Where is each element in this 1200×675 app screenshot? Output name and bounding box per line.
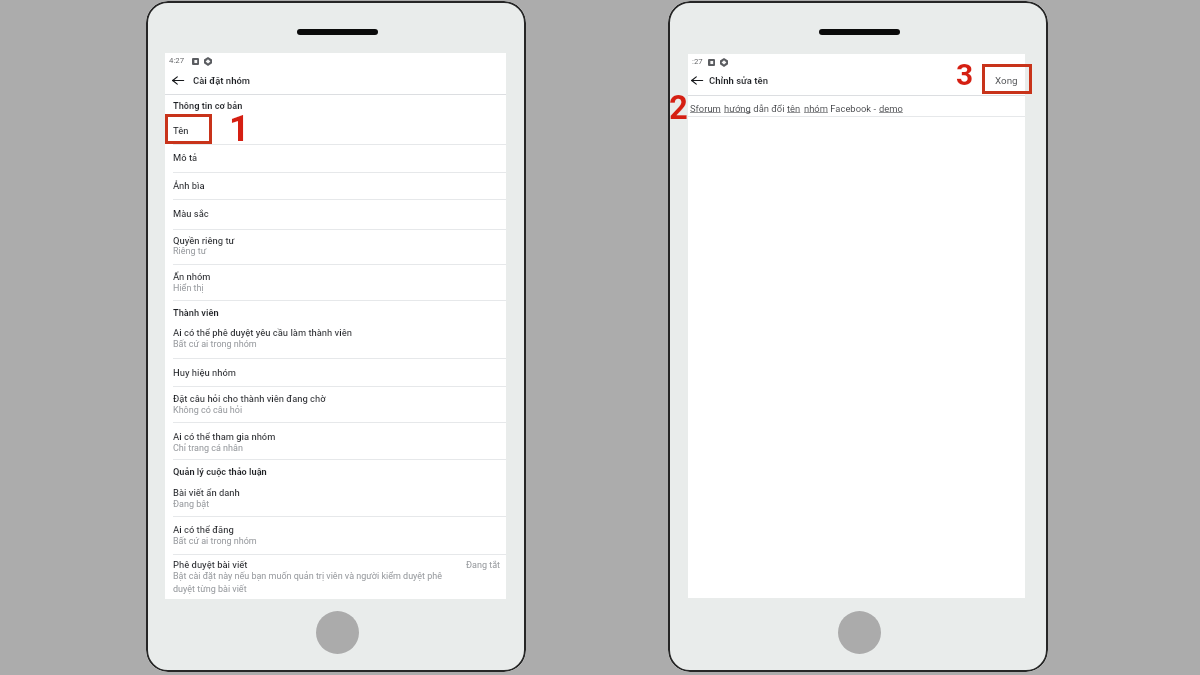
staticText: Bất cứ ai trong nhóm bbox=[173, 536, 257, 547]
staticText: Phê duyệt bài viết bbox=[173, 559, 248, 570]
button[interactable]: Đặt câu hỏi cho thành viên đang chờ bbox=[165, 386, 506, 421]
staticText: 3 bbox=[956, 57, 974, 92]
staticText: Bất cứ ai trong nhóm bbox=[173, 339, 257, 350]
staticText: Ai có thể phê duyệt yêu cầu làm thành vi… bbox=[173, 327, 352, 338]
staticText: Bật cài đặt này nếu bạn muốn quản trị vi… bbox=[173, 571, 450, 595]
staticText: Thành viên bbox=[173, 307, 219, 318]
staticText: Ảnh bìa bbox=[173, 180, 205, 191]
staticText: Mô tả bbox=[173, 152, 198, 163]
staticText: 2 bbox=[669, 88, 688, 127]
button[interactable]: Màu sắc bbox=[165, 200, 506, 228]
staticText: Xong bbox=[995, 75, 1018, 86]
staticText: Đặt câu hỏi cho thành viên đang chờ bbox=[173, 393, 326, 404]
button[interactable]: Ai có thể tham gia nhóm bbox=[165, 422, 506, 458]
staticText: Sforum bbox=[690, 103, 721, 114]
staticText: tên bbox=[787, 103, 801, 114]
staticText: Riêng tư bbox=[173, 246, 207, 257]
staticText: Facebook - bbox=[828, 103, 879, 114]
staticText: 1 bbox=[229, 108, 250, 150]
button[interactable]: Xong bbox=[988, 66, 1025, 94]
staticText: Chỉ trang cá nhân bbox=[173, 443, 243, 454]
staticText: hướng bbox=[724, 103, 751, 114]
staticText: Tên bbox=[173, 125, 189, 136]
staticText: Thông tin cơ bản bbox=[173, 100, 243, 111]
staticText: Bài viết ẩn danh bbox=[173, 487, 240, 498]
staticText: Màu sắc bbox=[173, 208, 209, 219]
staticText: Không có câu hỏi bbox=[173, 405, 243, 416]
staticText: Cài đặt nhóm bbox=[193, 75, 251, 86]
other: Back bbox=[172, 76, 184, 85]
staticText: Hiển thị bbox=[173, 283, 204, 294]
button[interactable]: Back bbox=[165, 66, 506, 93]
staticText: :27 bbox=[692, 57, 703, 66]
button[interactable]: Ẩn nhóm bbox=[165, 265, 506, 300]
staticText: Ẩn nhóm bbox=[173, 271, 211, 282]
button[interactable]: Sforum bbox=[690, 103, 903, 114]
button[interactable]: Ai có thể đăng bbox=[165, 516, 506, 553]
button[interactable]: Ai có thể phê duyệt yêu cầu làm thành vi… bbox=[165, 321, 506, 357]
button[interactable]: Quyền riêng tư bbox=[165, 229, 506, 264]
staticText: Quản lý cuộc thảo luận bbox=[173, 466, 267, 477]
button[interactable]: Huy hiệu nhóm bbox=[165, 358, 506, 385]
staticText: 4:27 bbox=[169, 56, 185, 65]
staticText: dẫn đổi bbox=[751, 103, 787, 114]
button[interactable]: Bài viết ẩn danh bbox=[165, 480, 506, 515]
button[interactable]: Phê duyệt bài viết bbox=[165, 555, 506, 598]
button[interactable]: Mô tả bbox=[165, 144, 506, 172]
staticText: nhóm bbox=[804, 103, 828, 114]
staticText: Ai có thể đăng bbox=[173, 524, 234, 535]
staticText: Chỉnh sửa tên bbox=[709, 75, 768, 86]
button[interactable]: Ảnh bìa bbox=[165, 172, 506, 200]
button[interactable]: Tên bbox=[165, 113, 506, 142]
staticText: Đang bật bbox=[173, 499, 210, 510]
staticText: Đang tắt bbox=[466, 560, 500, 571]
staticText: Huy hiệu nhóm bbox=[173, 367, 236, 378]
staticText: Quyền riêng tư bbox=[173, 235, 235, 246]
staticText: demo bbox=[879, 103, 903, 114]
button[interactable]: Back bbox=[687, 67, 707, 94]
staticText: Ai có thể tham gia nhóm bbox=[173, 431, 276, 442]
